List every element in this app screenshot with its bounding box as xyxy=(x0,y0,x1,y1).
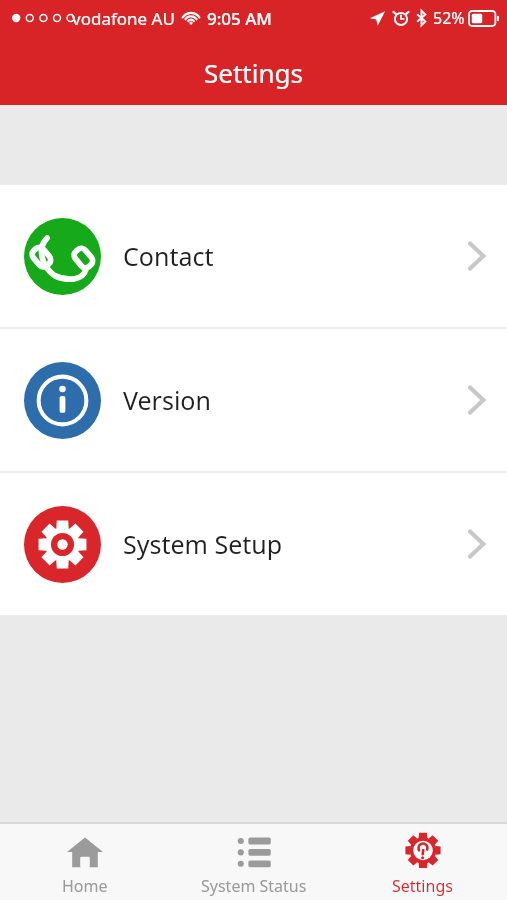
button[interactable]: Version xyxy=(0,329,507,471)
button[interactable]: Home xyxy=(0,824,169,900)
staticText: 9:05 AM xyxy=(207,7,272,30)
staticText: Contact xyxy=(123,239,214,273)
staticText: Version xyxy=(123,383,211,417)
staticText: Home xyxy=(62,875,108,897)
button[interactable]: Settings xyxy=(338,824,507,900)
button[interactable]: System Status xyxy=(169,824,338,900)
button[interactable]: System Setup xyxy=(0,473,507,615)
staticText: vodafone AU xyxy=(72,7,175,30)
staticText: 52% xyxy=(433,7,465,29)
staticText: System Status xyxy=(201,875,307,897)
staticText: System Setup xyxy=(123,527,283,561)
button[interactable]: Contact xyxy=(0,185,507,327)
staticText: Settings xyxy=(392,875,453,897)
staticText: Settings xyxy=(204,55,303,90)
